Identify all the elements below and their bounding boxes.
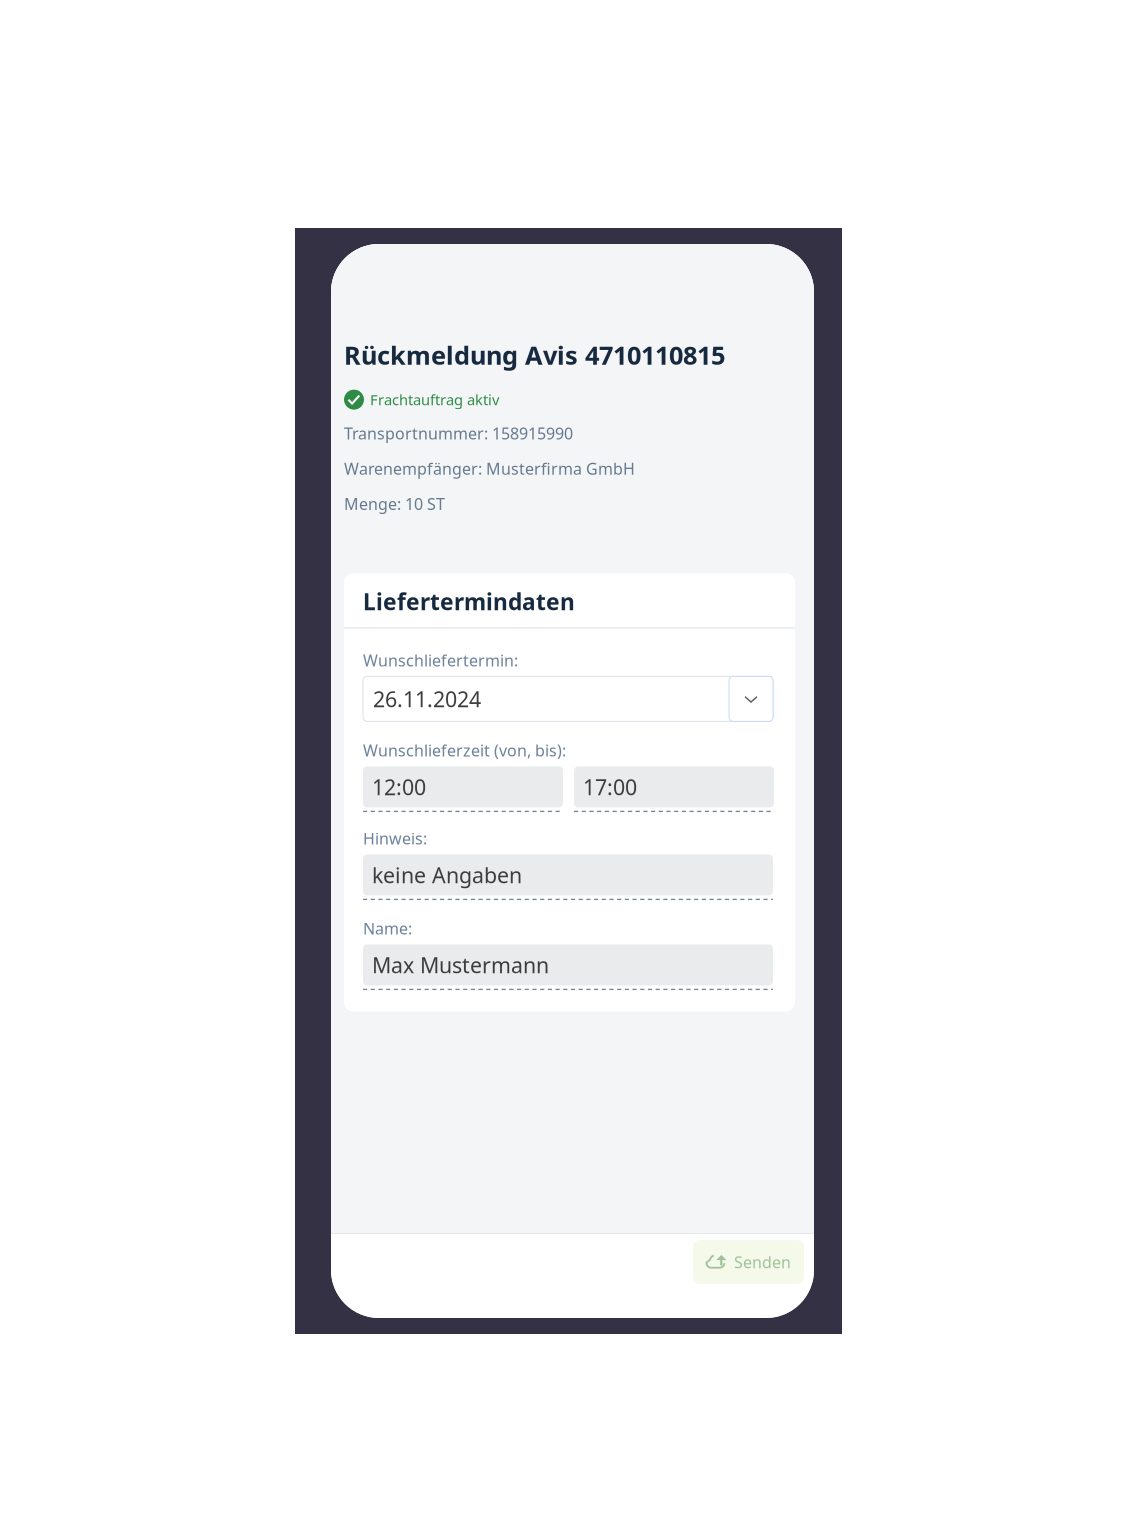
staticText: Wunschliefertermin:	[363, 650, 518, 671]
button[interactable]: 26.11.2024	[363, 676, 773, 721]
staticText: Rückmeldung Avis 4710110815	[344, 338, 725, 372]
staticText: Menge: 10 ST	[344, 493, 445, 514]
staticText: Transportnummer: 158915990	[344, 423, 573, 444]
staticText: 26.11.2024	[373, 685, 481, 713]
staticText: Warenempfänger: Musterfirma GmbH	[344, 458, 635, 479]
button[interactable]: keine Angaben	[363, 854, 773, 900]
staticText: Max Mustermann	[372, 951, 549, 979]
button[interactable]: Max Mustermann	[363, 944, 773, 990]
staticText: Senden	[734, 1251, 791, 1273]
staticText: Wunschlieferzeit (von, bis):	[363, 740, 566, 761]
staticText: Liefertermindaten	[363, 586, 575, 616]
button[interactable]: 17:00	[574, 766, 774, 812]
staticText: 12:00	[372, 773, 426, 801]
button[interactable]: 12:00	[363, 766, 563, 812]
button[interactable]: Senden	[693, 1240, 804, 1284]
staticText: Hinweis:	[363, 828, 427, 849]
staticText: Frachtauftrag aktiv	[370, 390, 499, 409]
staticText: Name:	[363, 918, 412, 939]
staticText: 17:00	[583, 773, 637, 801]
staticText: keine Angaben	[372, 861, 522, 889]
